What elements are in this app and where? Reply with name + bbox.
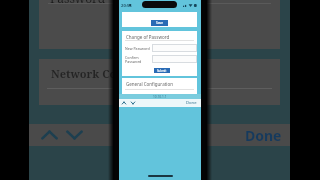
button[interactable]: Save — [151, 20, 168, 26]
button[interactable] — [152, 55, 197, 63]
staticText: Change of Password — [126, 34, 170, 40]
staticText: Confirm Password — [125, 55, 142, 65]
button[interactable]: Previous field — [121, 100, 127, 106]
button[interactable]: Next field — [64, 125, 85, 145]
staticText: 10.10.1.1 — [153, 95, 167, 99]
staticText: 20:54 — [121, 3, 132, 9]
staticText: Save — [156, 21, 163, 25]
button[interactable] — [152, 44, 197, 52]
button[interactable]: Next field — [130, 100, 136, 106]
staticText: Password — [50, 0, 106, 6]
staticText: General Configuration — [126, 81, 173, 87]
staticText: Submit — [157, 69, 167, 73]
button[interactable]: Done — [186, 100, 197, 106]
button[interactable]: Previous field — [39, 125, 60, 145]
staticText: Network Con — [51, 66, 124, 81]
staticText: New Password — [125, 46, 150, 51]
button[interactable]: Submit — [154, 68, 170, 73]
button[interactable]: Done — [245, 126, 282, 145]
